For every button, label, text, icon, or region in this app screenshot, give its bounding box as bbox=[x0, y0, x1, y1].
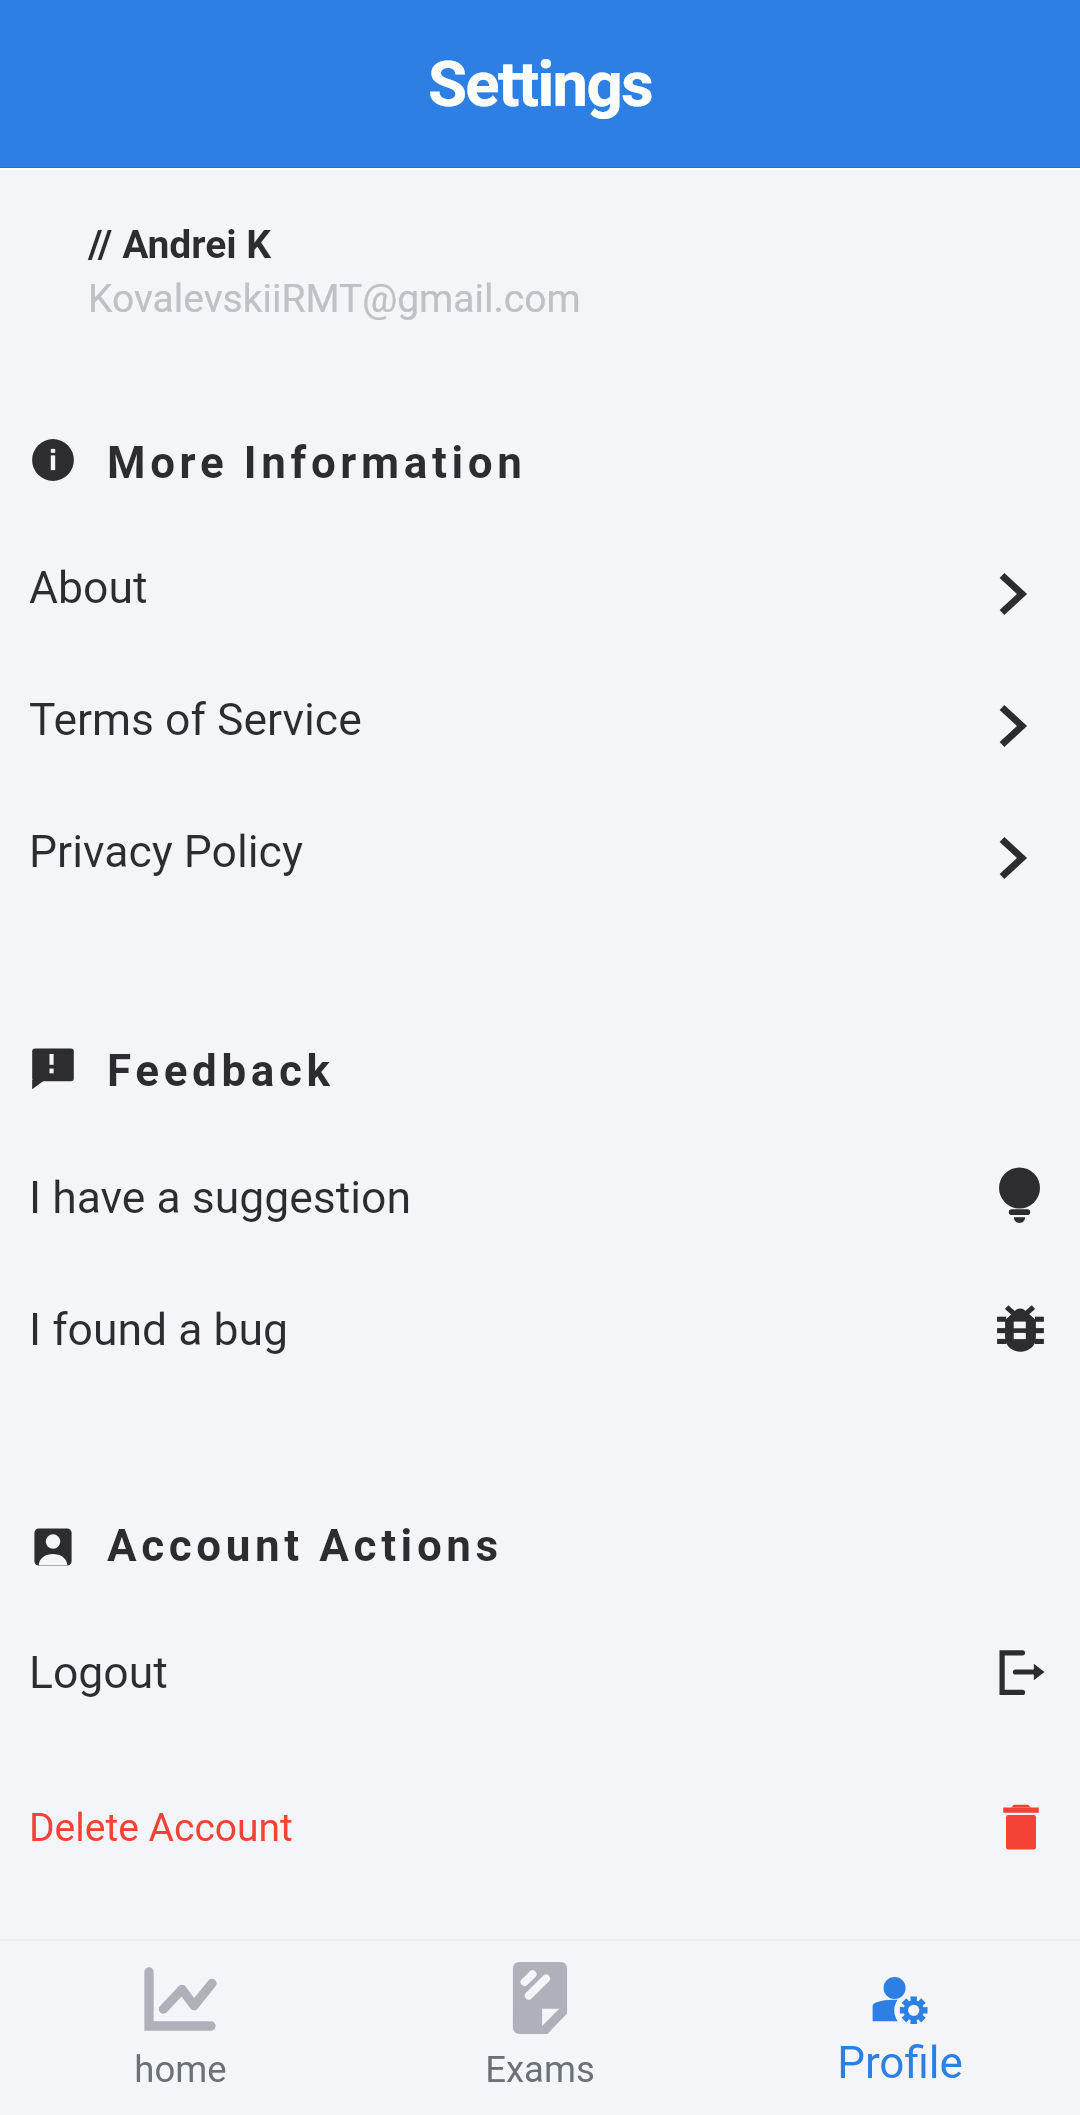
staticText: // Andrei K bbox=[88, 222, 272, 268]
staticText: Logout bbox=[29, 1647, 168, 1699]
other: Profile bbox=[863, 1961, 937, 2035]
button[interactable]: home bbox=[0, 1941, 360, 2115]
staticText: KovalevskiiRMT@gmail.com bbox=[88, 276, 581, 322]
button[interactable]: About bbox=[0, 550, 1080, 630]
staticText: I have a suggestion bbox=[29, 1172, 412, 1224]
staticText: Account Actions bbox=[107, 1520, 503, 1572]
staticText: I found a bug bbox=[29, 1304, 288, 1356]
other: Exams bbox=[503, 1961, 577, 2035]
other: Logout bbox=[995, 1646, 1047, 1698]
staticText: home bbox=[134, 2048, 227, 2091]
other: About bbox=[995, 564, 1047, 616]
staticText: Profile bbox=[837, 2037, 963, 2089]
staticText: Delete Account bbox=[29, 1805, 293, 1851]
other: I have a suggestion bbox=[995, 1169, 1047, 1221]
button[interactable]: Logout bbox=[0, 1632, 1080, 1712]
other: I found a bug bbox=[995, 1301, 1047, 1353]
other: Delete Account bbox=[995, 1799, 1047, 1851]
staticText: Exams bbox=[485, 2048, 595, 2091]
button[interactable]: Terms of Service bbox=[0, 682, 1080, 762]
staticText: About bbox=[29, 562, 148, 614]
button[interactable]: Exams bbox=[360, 1941, 720, 2115]
other: home bbox=[143, 1961, 217, 2035]
staticText: Terms of Service bbox=[29, 694, 362, 746]
staticText: More Information bbox=[107, 437, 527, 489]
button[interactable]: I found a bug bbox=[0, 1287, 1080, 1367]
other: Privacy Policy bbox=[995, 828, 1047, 880]
button[interactable]: I have a suggestion bbox=[0, 1155, 1080, 1235]
staticText: Settings bbox=[428, 47, 653, 121]
staticText: Privacy Policy bbox=[29, 826, 303, 878]
button[interactable]: Privacy Policy bbox=[0, 814, 1080, 894]
button[interactable]: Delete Account bbox=[0, 1790, 1080, 1870]
staticText: Feedback bbox=[107, 1045, 335, 1097]
button[interactable]: Profile bbox=[720, 1941, 1080, 2115]
other: Terms of Service bbox=[995, 696, 1047, 748]
